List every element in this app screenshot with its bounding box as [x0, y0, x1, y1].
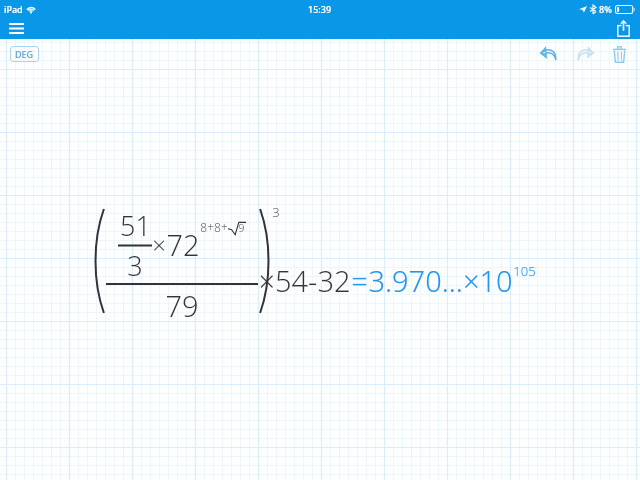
staticText: 3: [272, 203, 280, 221]
button[interactable]: Delete: [606, 41, 632, 67]
staticText: 79: [165, 286, 199, 325]
staticText: 105: [513, 262, 536, 280]
staticText: =: [351, 261, 368, 300]
button[interactable]: Menu: [4, 18, 28, 39]
button[interactable]: DEG: [15, 48, 34, 60]
staticText: ×: [152, 228, 166, 261]
button[interactable]: Share: [611, 18, 635, 39]
staticText: 9: [238, 220, 245, 235]
staticText: iPad: [4, 3, 23, 15]
staticText: 8+8+: [200, 219, 228, 235]
staticText: DEG: [15, 48, 34, 60]
staticText: 51: [120, 207, 151, 244]
staticText: 72: [166, 225, 200, 264]
button[interactable]: Redo: [570, 41, 600, 67]
staticText: 8%: [599, 3, 612, 15]
button[interactable]: Undo: [534, 41, 564, 67]
staticText: 3.970...×10: [368, 261, 513, 300]
staticText: 3: [127, 247, 143, 284]
staticText: 15:39: [308, 3, 332, 15]
staticText: ×54-32: [258, 261, 351, 300]
